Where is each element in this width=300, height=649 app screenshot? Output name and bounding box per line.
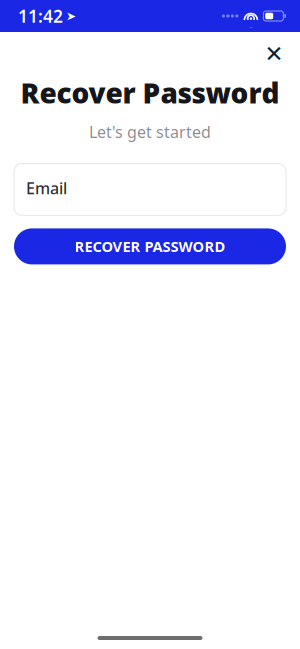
- button[interactable]: RECOVER PASSWORD: [14, 228, 286, 264]
- staticText: Email: [26, 177, 67, 199]
- staticText: RECOVER PASSWORD: [74, 237, 225, 256]
- staticText: Recover Password: [20, 74, 279, 111]
- staticText: Let's get started: [89, 121, 211, 142]
- button[interactable]: Close: [257, 37, 291, 71]
- staticText: ➤: [66, 9, 76, 23]
- staticText: ✕: [264, 41, 283, 67]
- staticText: 11:42: [18, 4, 63, 27]
